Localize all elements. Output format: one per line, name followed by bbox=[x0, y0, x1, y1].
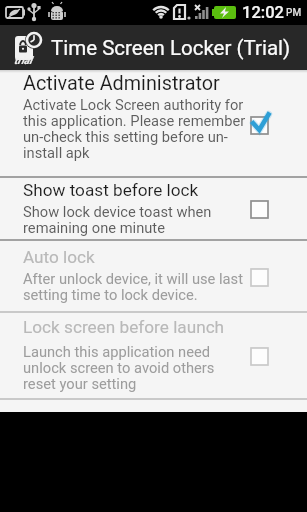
button[interactable]: Show toast before lock bbox=[0, 178, 307, 241]
staticText: trial bbox=[14, 54, 33, 66]
staticText: un-check this setting before un- bbox=[23, 128, 228, 148]
staticText: Launch this application need bbox=[23, 343, 211, 363]
staticText: PM bbox=[286, 7, 302, 19]
staticText: Auto lock bbox=[23, 247, 95, 273]
staticText: Activate Administrator bbox=[23, 72, 220, 98]
staticText: unlock screen to avoid others bbox=[23, 359, 215, 379]
staticText: setting time to lock device. bbox=[23, 286, 198, 306]
staticText: reset your setting bbox=[23, 375, 137, 395]
button[interactable]: Lock screen before launch bbox=[0, 313, 307, 400]
staticText: remaining one minute bbox=[23, 219, 165, 239]
staticText: Lock screen before launch bbox=[23, 317, 225, 343]
button[interactable]: Activate Administrator bbox=[0, 73, 307, 178]
staticText: Time Screen Locker (Trial) bbox=[51, 36, 291, 60]
staticText: Activate Lock Screen authority for bbox=[23, 96, 244, 116]
staticText: this application. Please remember bbox=[23, 112, 246, 132]
button[interactable]: trial bbox=[0, 25, 307, 70]
staticText: After unlock device, it will use last bbox=[23, 270, 243, 290]
button[interactable]: Auto lock bbox=[0, 241, 307, 313]
staticText: Show toast before lock bbox=[23, 180, 199, 206]
staticText: Show lock device toast when bbox=[23, 203, 212, 223]
staticText: install apk bbox=[23, 144, 90, 164]
staticText: 12:02 bbox=[242, 3, 284, 22]
